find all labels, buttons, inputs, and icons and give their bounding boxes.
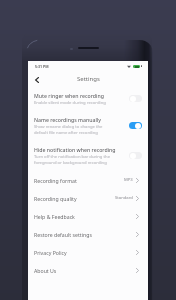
button[interactable]: Recording format xyxy=(28,171,148,189)
button[interactable]: Back xyxy=(31,74,42,85)
staticText: Settings xyxy=(77,75,100,83)
staticText: Restore default settings xyxy=(34,231,92,238)
staticText: Turn off the notification bar during the… xyxy=(34,154,110,165)
button[interactable]: Privacy Policy xyxy=(28,243,148,261)
button[interactable]: Toggle xyxy=(129,152,142,159)
button[interactable]: Mute ringer when recording xyxy=(28,87,148,110)
staticText: Help & Feedback xyxy=(34,213,75,220)
staticText: MP3 xyxy=(124,177,133,183)
staticText: Mute ringer when recording xyxy=(34,92,104,99)
staticText: 5:31 PM xyxy=(35,64,49,69)
staticText: Show rename dialog to change the default… xyxy=(34,124,103,135)
button[interactable]: About Us xyxy=(28,261,148,279)
button[interactable]: Toggle xyxy=(129,95,142,102)
staticText: Name recordings manually xyxy=(34,116,101,123)
button[interactable]: Name recordings manually xyxy=(28,110,148,140)
staticText: Enable silent mode during recording xyxy=(34,100,106,106)
button[interactable]: Restore default settings xyxy=(28,225,148,243)
button[interactable]: Recording quality xyxy=(28,189,148,207)
staticText: Recording format xyxy=(34,177,77,184)
staticText: Standard xyxy=(115,195,133,201)
button[interactable]: Help & Feedback xyxy=(28,207,148,225)
staticText: Privacy Policy xyxy=(34,249,67,256)
staticText: Hide notification when recording xyxy=(34,146,116,153)
button[interactable]: Hide notification when recording xyxy=(28,140,148,171)
staticText: About Us xyxy=(34,267,57,274)
staticText: Recording quality xyxy=(34,195,77,202)
button[interactable]: Toggle xyxy=(129,122,142,129)
